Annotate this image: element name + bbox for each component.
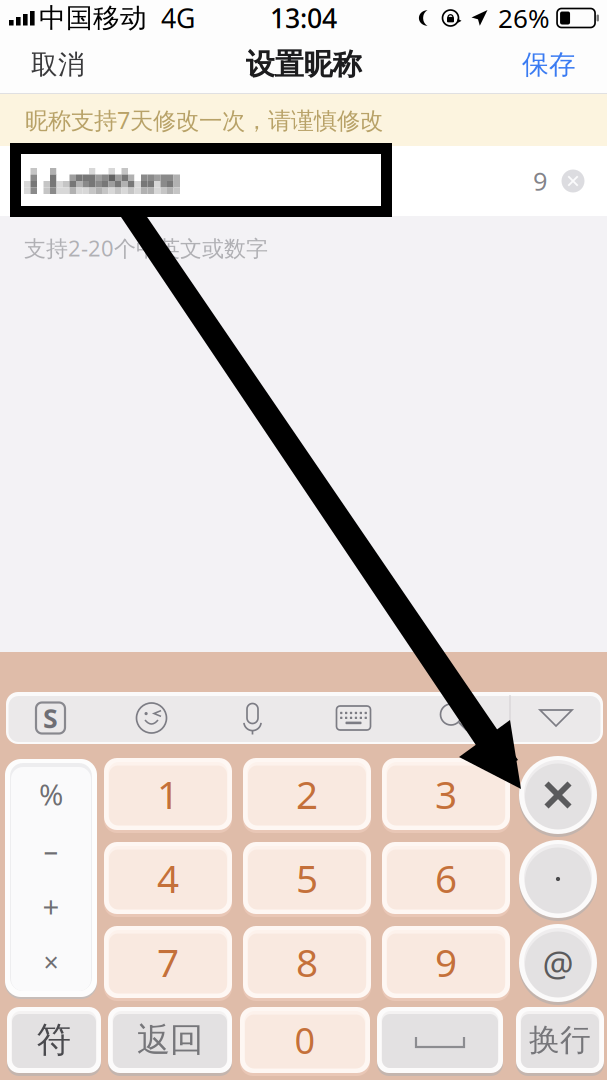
button[interactable]: 8 xyxy=(243,925,371,999)
button[interactable]: 2 xyxy=(243,757,371,831)
staticText: 1 xyxy=(157,768,179,820)
button[interactable]: Search xyxy=(404,693,505,743)
staticText: 保存 xyxy=(522,48,576,81)
button[interactable]: New line xyxy=(516,1006,604,1074)
staticText: 中国移动 xyxy=(39,1,147,35)
staticText: 5 xyxy=(296,852,318,904)
button[interactable]: 3 xyxy=(382,757,510,831)
staticText: 0 xyxy=(294,1015,315,1064)
button[interactable]: Symbols xyxy=(5,758,97,998)
staticText: % xyxy=(39,774,63,814)
button[interactable]: Delete xyxy=(519,754,597,835)
button[interactable]: Hide keyboard xyxy=(505,693,607,743)
staticText: 6 xyxy=(435,852,457,904)
button[interactable]: 取消 xyxy=(0,36,116,93)
button[interactable]: 9 xyxy=(382,925,510,999)
staticText: S xyxy=(43,700,58,736)
staticText: 4 xyxy=(157,852,179,904)
staticText: 换行 xyxy=(529,1021,591,1059)
staticText: 9 xyxy=(435,936,457,988)
staticText: 设置昵称 xyxy=(245,46,361,83)
staticText: 符 xyxy=(36,1018,71,1062)
staticText: 8 xyxy=(296,936,318,988)
button[interactable]: At sign xyxy=(519,922,597,1003)
staticText: 昵称支持7天修改一次，请谨慎修改 xyxy=(25,104,383,136)
staticText: @ xyxy=(542,939,573,987)
staticText: 13:04 xyxy=(270,0,337,36)
button[interactable]: Symbols xyxy=(7,1006,101,1074)
staticText: 9 xyxy=(533,164,547,198)
button[interactable]: Space xyxy=(377,1006,503,1074)
staticText: 支持2-20个中英文或数字 xyxy=(24,233,268,263)
staticText: 返回 xyxy=(137,1019,203,1061)
staticText: 2 xyxy=(296,768,318,820)
staticText: 4G xyxy=(161,0,195,36)
button[interactable]: Return xyxy=(108,1006,232,1074)
staticText: 3 xyxy=(435,768,457,820)
button[interactable]: Keyboard layout xyxy=(303,693,404,743)
button[interactable]: 5 xyxy=(243,841,371,915)
button[interactable]: Period xyxy=(519,838,597,919)
button[interactable]: Emoji xyxy=(101,693,202,743)
button[interactable]: Voice input xyxy=(202,693,303,743)
button[interactable]: Clear text xyxy=(547,146,599,216)
button[interactable]: 4 xyxy=(104,841,232,915)
staticText: 取消 xyxy=(31,48,85,81)
button[interactable]: 6 xyxy=(382,841,510,915)
button[interactable]: 保存 xyxy=(491,36,607,93)
staticText: × xyxy=(43,944,58,980)
button[interactable]: 1 xyxy=(104,757,232,831)
button[interactable]: 7 xyxy=(104,925,232,999)
staticText: + xyxy=(42,886,59,926)
button[interactable]: Sogou input method xyxy=(0,693,101,743)
staticText: – xyxy=(43,830,58,870)
staticText: 26% xyxy=(498,0,550,36)
staticText: 7 xyxy=(157,936,179,988)
button[interactable]: 0 xyxy=(240,1006,370,1074)
